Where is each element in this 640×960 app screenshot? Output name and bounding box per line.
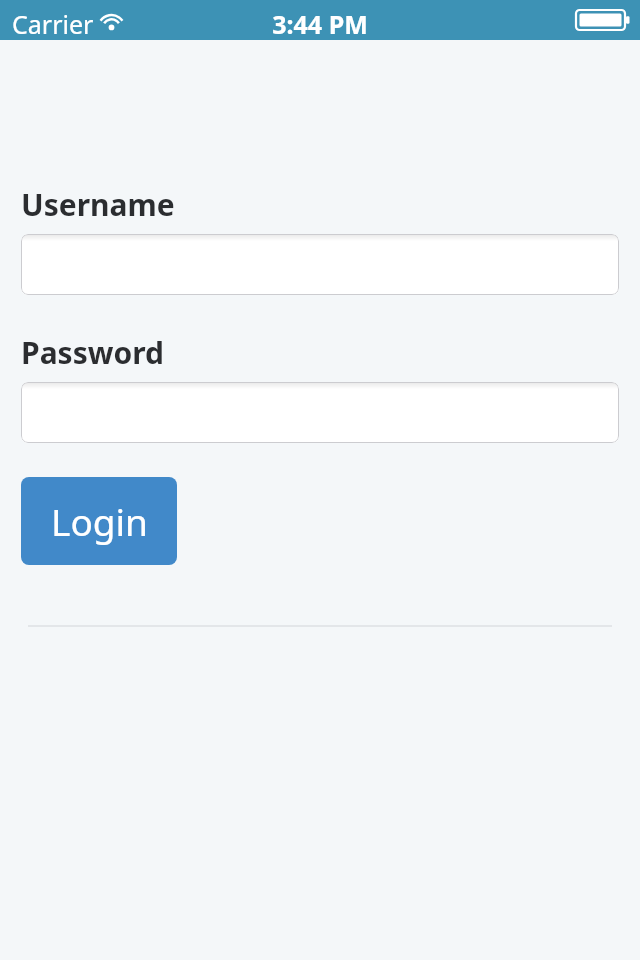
- other: Battery full: [576, 10, 630, 30]
- staticText: Carrier: [12, 7, 94, 41]
- button[interactable]: Login: [21, 477, 177, 565]
- staticText: 3:44 PM: [0, 7, 640, 41]
- staticText: Username: [21, 184, 175, 225]
- other: Wi-Fi signal: [97, 9, 126, 31]
- button[interactable]: Username input field: [21, 234, 619, 295]
- staticText: Password: [21, 332, 164, 373]
- button[interactable]: Password input field: [21, 382, 619, 443]
- staticText: Login: [51, 496, 148, 546]
